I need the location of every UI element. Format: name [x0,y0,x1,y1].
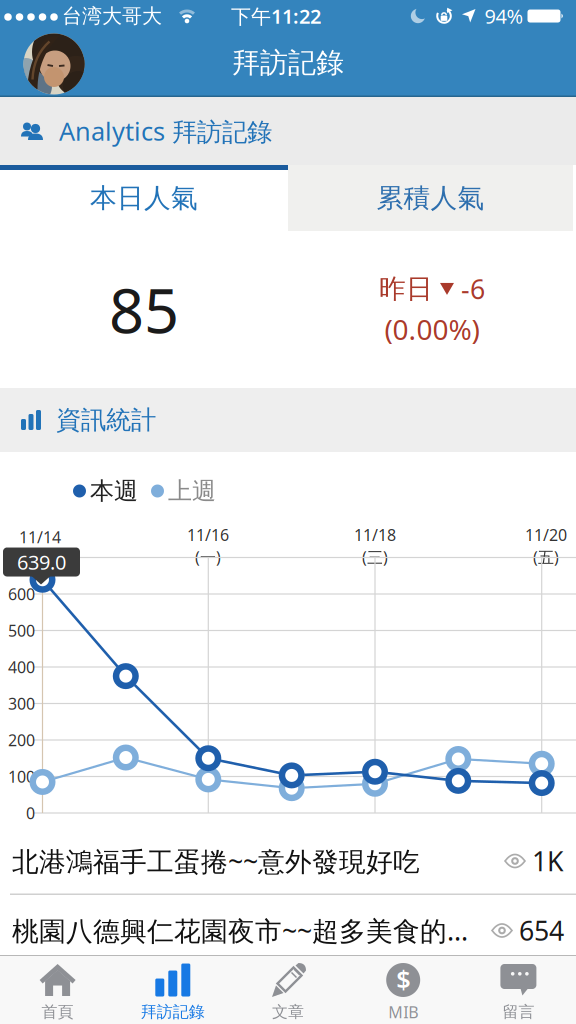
button[interactable]: $ [346,956,461,1024]
staticText: 資訊統計 [56,404,156,435]
staticText: 85 [109,269,179,350]
button[interactable]: 留言 [461,956,576,1024]
button[interactable]: 拜訪記錄 [115,956,230,1024]
staticText: 11/20 [525,524,567,545]
staticText: Analytics 拜訪記錄 [59,114,272,148]
staticText: 100 [8,766,35,787]
staticText: 拜訪記錄 [232,46,344,80]
staticText: 654 [519,913,564,948]
staticText: (一) [195,546,221,568]
staticText: 200 [8,729,35,751]
staticText: 本週 [90,476,138,506]
staticText: (0.00%) [384,311,479,348]
staticText: 上週 [168,476,216,506]
staticText: 留言 [502,1002,534,1022]
button[interactable]: 個人頭像 [23,33,84,94]
staticText: 11/16 [187,524,229,545]
staticText: (三) [362,546,388,568]
staticText: 300 [8,693,35,714]
staticText: 500 [8,620,35,641]
button[interactable]: 首頁 [0,956,115,1024]
staticText: 400 [8,656,35,678]
button[interactable]: 本日人氣 [0,165,288,231]
staticText: 累積人氣 [376,182,484,214]
staticText: 11/14 [19,526,61,548]
staticText: -6 [461,271,485,307]
staticText: 600 [8,583,35,605]
staticText: $ [396,962,410,996]
staticText: (五) [533,546,559,568]
staticText: 94% [484,3,523,29]
staticText: 1K [532,843,564,879]
staticText: 11/18 [354,524,396,545]
button[interactable]: 北港鴻福手工蛋捲~~意外發現好吃 [0,824,576,898]
staticText: 639.0 [17,549,66,575]
staticText: 首頁 [42,1002,74,1022]
staticText: 北港鴻福手工蛋捲~~意外發現好吃 [12,843,420,879]
staticText: 文章 [272,1002,304,1022]
staticText: 桃園八德興仁花園夜市~~超多美食的... [12,913,468,948]
staticText: 0 [26,802,35,824]
staticText: MIB [388,1001,418,1023]
button[interactable]: 累積人氣 [288,165,576,231]
staticText: 台湾大哥大 [62,4,162,28]
staticText: 下午11:22 [231,3,321,29]
staticText: 拜訪記錄 [141,1002,205,1022]
button[interactable]: 桃園八德興仁花園夜市~~超多美食的... [0,900,576,961]
staticText: 昨日 [379,272,433,305]
button[interactable]: 文章 [230,956,346,1024]
staticText: 本日人氣 [90,182,198,214]
button[interactable]: Analytics 拜訪記錄 [0,97,576,165]
